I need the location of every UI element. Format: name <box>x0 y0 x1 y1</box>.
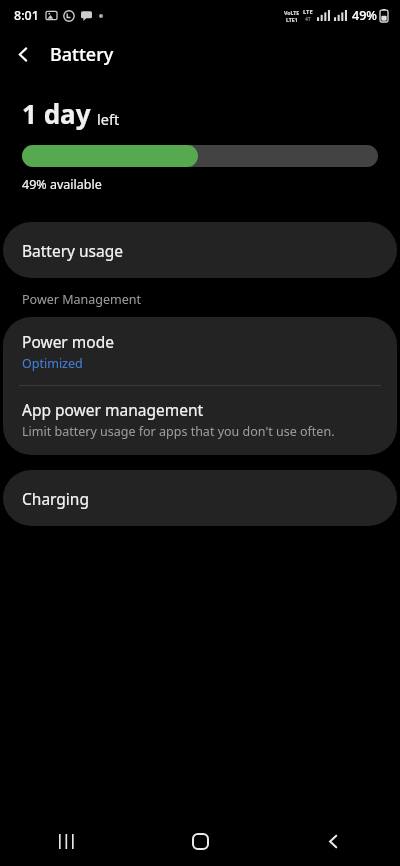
staticText: Battery usage <box>22 240 124 261</box>
button[interactable]: Power mode <box>3 317 397 385</box>
staticText: 8:01 <box>14 7 39 24</box>
staticText: LTE1 <box>286 16 298 23</box>
staticText: Power Management <box>22 291 141 308</box>
button[interactable]: Charging <box>3 470 397 526</box>
button[interactable]: Recents <box>0 816 134 866</box>
button[interactable]: Back <box>0 31 46 77</box>
staticText: Optimized <box>22 355 83 372</box>
button[interactable]: Battery usage <box>3 222 397 278</box>
staticText: Charging <box>22 488 89 509</box>
staticText: App power management <box>22 399 204 420</box>
staticText: 1 day <box>22 96 91 131</box>
staticText: 49% available <box>22 176 102 193</box>
button[interactable]: Home <box>134 816 267 866</box>
staticText: 4T <box>305 16 311 23</box>
staticText: Power mode <box>22 331 114 352</box>
button[interactable]: Back <box>267 816 400 866</box>
staticText: Limit battery usage for apps that you do… <box>22 423 335 440</box>
staticText: left <box>97 109 120 129</box>
staticText: Battery <box>50 42 114 67</box>
button[interactable]: App power management <box>3 386 397 455</box>
staticText: VoLTE <box>284 9 300 16</box>
staticText: LTE <box>303 8 313 16</box>
staticText: 49% <box>352 7 377 24</box>
